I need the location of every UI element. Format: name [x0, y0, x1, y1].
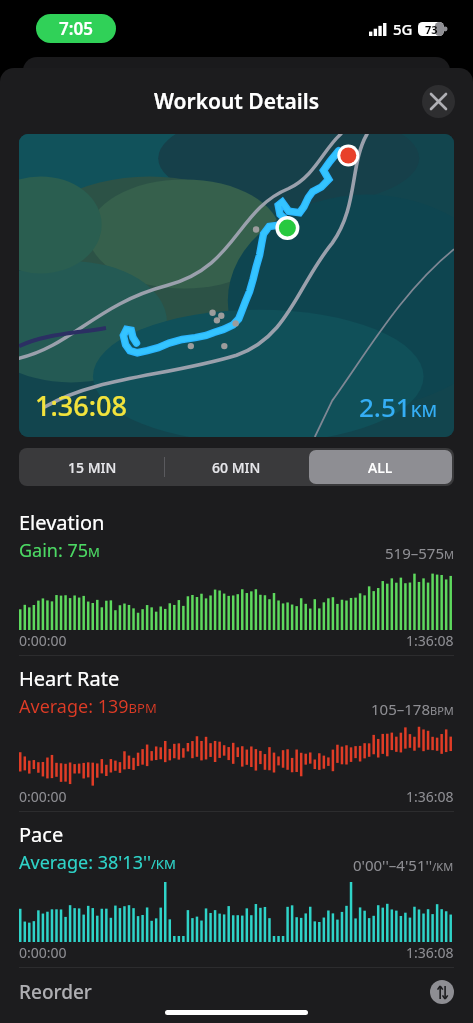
staticText: 1:36:08 [406, 943, 454, 962]
button[interactable]: ALL [309, 450, 452, 484]
button[interactable]: 60 MIN [165, 450, 308, 484]
staticText: Workout Details [154, 87, 320, 116]
button[interactable]: 15 MIN [21, 450, 164, 484]
staticText: 519–575M [385, 543, 454, 563]
staticText: 60 MIN [212, 458, 261, 477]
staticText: 73 [425, 22, 438, 37]
staticText: 0:00:00 [19, 943, 67, 962]
staticText: 1:36:08 [406, 787, 454, 806]
staticText: 15 MIN [68, 458, 117, 477]
staticText: 7:05 [59, 17, 93, 40]
staticText: Elevation [19, 509, 105, 536]
staticText: 1:36:08 [35, 387, 127, 424]
staticText: ALL [368, 458, 393, 477]
staticText: 0:00:00 [19, 787, 67, 806]
staticText: 2.51KM [359, 389, 438, 424]
staticText: Heart Rate [19, 665, 120, 692]
staticText: 1:36:08 [406, 631, 454, 650]
staticText: 0:00:00 [19, 631, 67, 650]
staticText: 105–178BPM [371, 699, 454, 719]
button[interactable]: Reorder [0, 968, 473, 1016]
button[interactable]: 1:36:08 [19, 134, 454, 437]
staticText: Reorder [19, 979, 92, 1005]
staticText: Average: 139BPM [19, 694, 157, 719]
staticText: Average: 38'13''/KM [19, 850, 176, 875]
staticText: Pace [19, 821, 64, 848]
staticText: Gain: 75M [19, 538, 100, 563]
staticText: 5G [393, 19, 413, 39]
staticText: 0'00''–4'51''/KM [353, 855, 454, 875]
button[interactable]: Close [422, 85, 455, 118]
